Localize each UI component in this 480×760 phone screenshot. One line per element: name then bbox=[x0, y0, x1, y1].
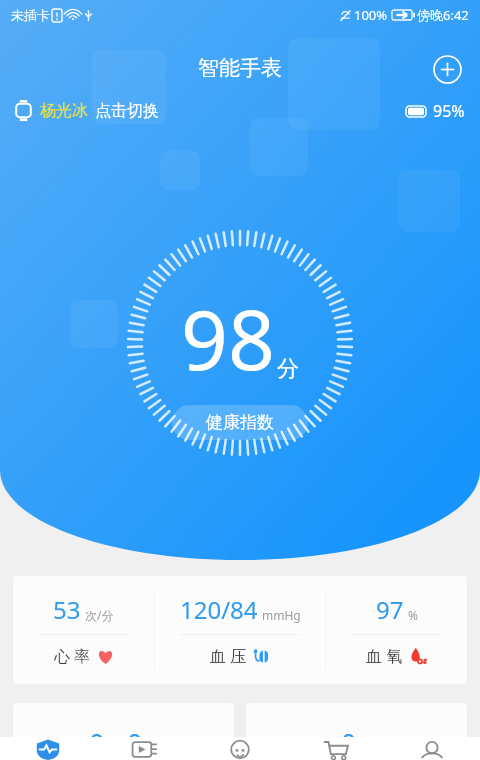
staticText: 次/分 bbox=[85, 607, 114, 623]
button[interactable]: 健康指数 bbox=[172, 405, 308, 440]
button[interactable]: Health bbox=[0, 737, 96, 760]
staticText: 未插卡 bbox=[11, 7, 50, 23]
button[interactable]: 0 bbox=[13, 703, 234, 760]
staticText: 95% bbox=[433, 100, 465, 122]
staticText: 98 bbox=[181, 282, 275, 394]
staticText: 97 bbox=[376, 593, 404, 626]
staticText: 血 氧 bbox=[366, 645, 403, 667]
staticText: 心 率 bbox=[54, 645, 91, 667]
staticText: 点击切换 bbox=[95, 101, 159, 121]
staticText: 智能手表 bbox=[198, 55, 282, 81]
staticText: % bbox=[408, 607, 418, 623]
staticText: 120/84 bbox=[180, 593, 258, 626]
staticText: 0 bbox=[341, 725, 357, 760]
button[interactable]: 杨光冰 bbox=[15, 99, 159, 122]
button[interactable]: 53 bbox=[13, 576, 467, 684]
staticText: 杨光冰 bbox=[40, 101, 88, 121]
button[interactable]: Assistant bbox=[192, 737, 288, 760]
button[interactable]: Store bbox=[288, 737, 384, 760]
staticText: 0 bbox=[89, 725, 105, 760]
staticText: 100% bbox=[354, 6, 388, 24]
staticText: 53 bbox=[53, 593, 81, 626]
staticText: 健康指数 bbox=[206, 412, 274, 433]
staticText: mmHg bbox=[262, 607, 301, 623]
staticText: 血 压 bbox=[210, 645, 247, 667]
button[interactable]: Profile bbox=[384, 737, 480, 760]
button[interactable]: Video bbox=[96, 737, 192, 760]
staticText: 分 bbox=[277, 355, 299, 383]
staticText: 0 bbox=[127, 725, 143, 760]
staticText: 分 bbox=[146, 741, 158, 756]
staticText: 傍晚6:42 bbox=[417, 6, 469, 24]
button[interactable]: Add device bbox=[429, 51, 465, 87]
button[interactable]: 0 bbox=[246, 703, 467, 760]
